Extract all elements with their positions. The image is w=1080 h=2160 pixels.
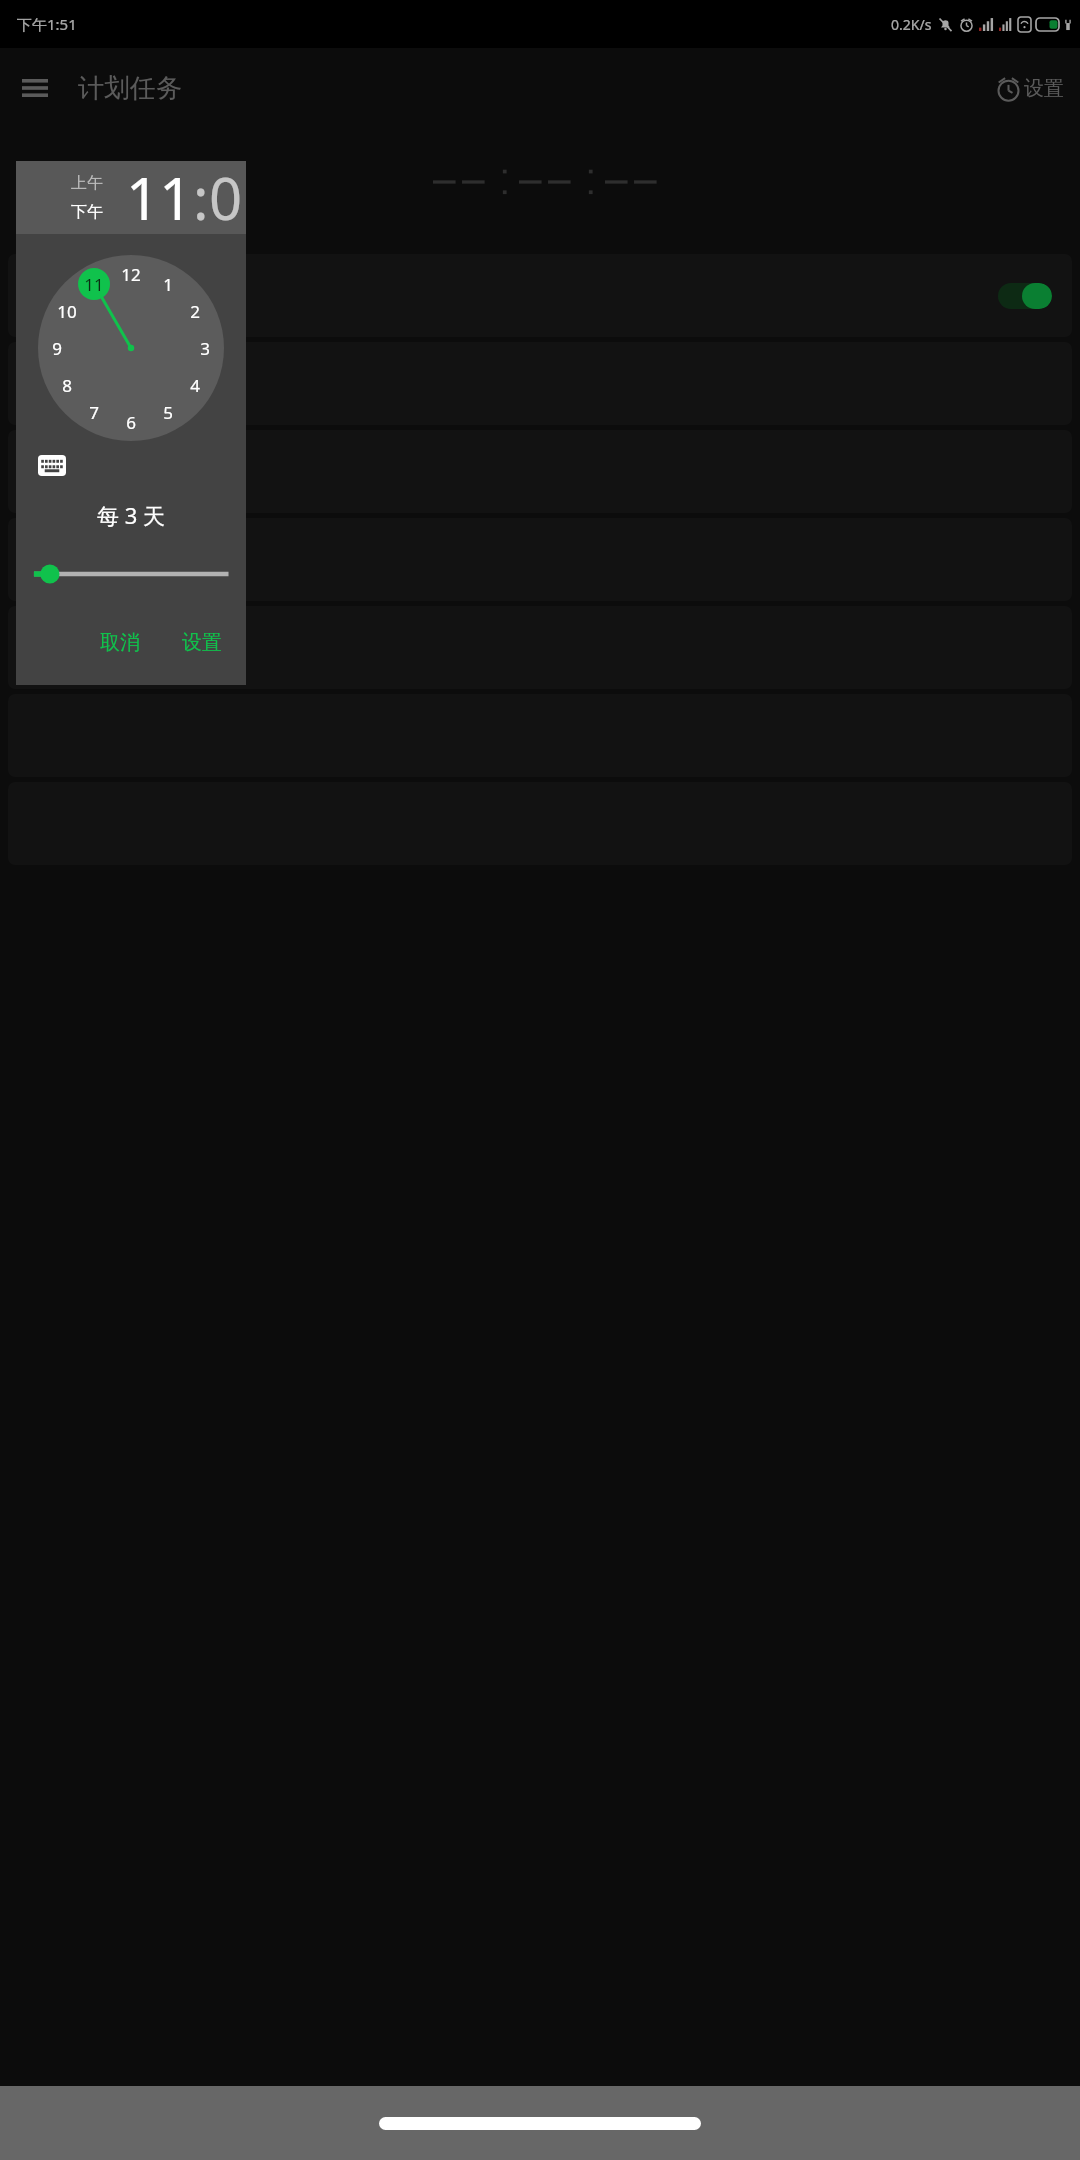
button[interactable] bbox=[8, 430, 1072, 513]
staticText: 0.2K/s bbox=[891, 15, 932, 34]
staticText: 上午 bbox=[71, 173, 103, 193]
button[interactable]: 3 bbox=[200, 337, 210, 360]
staticText: 7 bbox=[89, 401, 99, 424]
staticText: 4 bbox=[190, 374, 200, 397]
staticText: 11 bbox=[84, 273, 104, 296]
staticText: 12 bbox=[121, 263, 141, 286]
button[interactable]: Interval slider bbox=[16, 562, 246, 586]
button[interactable]: 1 bbox=[163, 273, 173, 296]
button[interactable]: 5 bbox=[163, 401, 173, 424]
button[interactable]: 11 bbox=[84, 273, 104, 296]
staticText: 3 bbox=[200, 337, 210, 360]
staticText: 11 bbox=[126, 158, 193, 231]
button[interactable] bbox=[8, 606, 1072, 689]
staticText: 9 bbox=[52, 337, 62, 360]
staticText: 设置 bbox=[1024, 76, 1064, 101]
button[interactable] bbox=[8, 342, 1072, 425]
button[interactable]: 10 bbox=[57, 300, 77, 323]
button[interactable]: 8 bbox=[62, 374, 72, 397]
staticText: 设置 bbox=[182, 630, 222, 655]
staticText: 下午1:51 bbox=[17, 14, 77, 34]
button[interactable]: 设置 bbox=[991, 69, 1068, 108]
button[interactable]: 6 bbox=[126, 411, 136, 434]
button[interactable]: Enable task bbox=[998, 283, 1052, 309]
button[interactable]: 00 bbox=[209, 158, 246, 231]
staticText: : bbox=[193, 158, 209, 231]
staticText: 00 bbox=[209, 158, 246, 231]
button[interactable]: 4 bbox=[190, 374, 200, 397]
staticText: 8 bbox=[62, 374, 72, 397]
button[interactable]: 7 bbox=[89, 401, 99, 424]
staticText: 10 bbox=[57, 300, 77, 323]
staticText: 6 bbox=[126, 411, 136, 434]
staticText: 计划任务 bbox=[78, 72, 182, 105]
button[interactable]: 11 bbox=[126, 158, 193, 231]
staticText: 每 3 天 bbox=[16, 500, 246, 530]
button[interactable]: Switch to keyboard input bbox=[36, 453, 68, 478]
staticText: 1 bbox=[163, 273, 173, 296]
button[interactable] bbox=[8, 518, 1072, 601]
staticText: 取消 bbox=[100, 630, 140, 655]
button[interactable]: 设置 bbox=[172, 622, 232, 663]
staticText: 2 bbox=[190, 300, 200, 323]
button[interactable]: 2 bbox=[190, 300, 200, 323]
button[interactable]: 取消 bbox=[90, 622, 150, 663]
button[interactable]: 9 bbox=[52, 337, 62, 360]
staticText: 卸载残留 bbox=[75, 279, 179, 312]
button[interactable]: 下午 bbox=[70, 201, 104, 223]
staticText: 5 bbox=[163, 401, 173, 424]
staticText: 下午 bbox=[71, 202, 103, 222]
button[interactable]: 12 bbox=[121, 263, 141, 286]
button[interactable]: Menu bbox=[10, 63, 60, 113]
button[interactable]: 上午 bbox=[70, 172, 104, 194]
button[interactable]: 卸载残留 bbox=[8, 254, 1072, 337]
